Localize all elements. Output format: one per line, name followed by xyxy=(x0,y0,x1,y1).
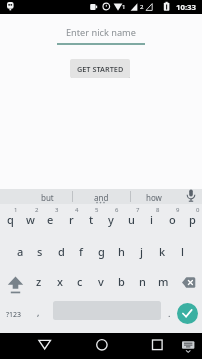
staticText: 6 xyxy=(115,206,119,214)
staticText: 10:33 xyxy=(176,2,197,13)
staticText: , xyxy=(37,306,40,318)
button[interactable]: k xyxy=(152,237,172,266)
staticText: g xyxy=(98,244,105,259)
staticText: e xyxy=(47,212,54,227)
staticText: 0 xyxy=(196,206,200,214)
button[interactable]: GET STARTED xyxy=(70,59,130,78)
button[interactable]: f xyxy=(71,237,91,266)
button[interactable]: h xyxy=(111,237,131,266)
staticText: k xyxy=(159,244,166,259)
staticText: 9 xyxy=(176,206,180,214)
button[interactable]: z xyxy=(29,267,49,296)
staticText: z xyxy=(36,274,42,289)
staticText: c xyxy=(77,274,83,289)
button[interactable]: w xyxy=(20,205,40,234)
button[interactable]: n xyxy=(132,267,152,296)
staticText: 8 xyxy=(156,206,160,214)
staticText: 3 xyxy=(55,206,59,214)
staticText: u xyxy=(128,212,135,227)
button[interactable]: , xyxy=(28,302,49,322)
button[interactable]: l xyxy=(172,237,192,266)
staticText: a xyxy=(17,244,24,259)
staticText: x xyxy=(57,274,63,289)
button[interactable]: q xyxy=(0,205,20,234)
staticText: w xyxy=(26,212,35,227)
button[interactable]: i xyxy=(141,205,161,234)
button[interactable]: e xyxy=(40,205,60,234)
staticText: ?123 xyxy=(6,310,22,320)
staticText: o xyxy=(169,212,176,227)
staticText: m xyxy=(158,274,169,289)
button[interactable]: how xyxy=(131,190,177,204)
button[interactable] xyxy=(2,267,30,296)
staticText: h xyxy=(118,244,125,259)
staticText: 1 xyxy=(122,3,126,11)
button[interactable] xyxy=(172,267,202,296)
staticText: 2 xyxy=(140,3,144,11)
button[interactable]: r xyxy=(61,205,81,234)
staticText: d xyxy=(58,244,65,259)
button[interactable] xyxy=(31,333,59,358)
staticText: GET STARTED xyxy=(77,64,124,74)
staticText: f xyxy=(79,244,83,259)
staticText: 1 xyxy=(14,206,18,214)
button[interactable]: j xyxy=(131,237,151,266)
button[interactable] xyxy=(177,303,198,324)
staticText: 7 xyxy=(136,206,140,214)
button[interactable]: but xyxy=(22,190,72,204)
button[interactable]: ?123 xyxy=(1,305,26,325)
staticText: 4 xyxy=(75,206,79,214)
staticText: s xyxy=(37,244,43,259)
staticText: . xyxy=(168,307,171,319)
button[interactable]: b xyxy=(111,267,131,296)
button[interactable]: m xyxy=(153,267,173,296)
staticText: n xyxy=(139,274,146,289)
button[interactable]: s xyxy=(30,237,50,266)
button[interactable]: o xyxy=(162,205,182,234)
button[interactable] xyxy=(142,333,170,358)
staticText: p xyxy=(189,212,196,227)
button[interactable]: v xyxy=(91,267,111,296)
staticText: q xyxy=(7,212,14,227)
staticText: 2 xyxy=(35,206,39,214)
button[interactable] xyxy=(88,333,116,358)
staticText: j xyxy=(140,244,143,259)
button[interactable]: a xyxy=(10,237,30,266)
staticText: r xyxy=(69,212,74,227)
button[interactable]: c xyxy=(70,267,90,296)
button[interactable]: p xyxy=(182,205,202,234)
staticText: 5 xyxy=(95,206,99,214)
button[interactable]: t xyxy=(81,205,101,234)
staticText: t xyxy=(89,212,94,227)
button[interactable]: and xyxy=(74,190,128,204)
button[interactable]: . xyxy=(159,303,180,323)
button[interactable] xyxy=(178,189,202,205)
button[interactable]: x xyxy=(50,267,70,296)
button[interactable]: u xyxy=(121,205,141,234)
button[interactable]: d xyxy=(51,237,71,266)
button[interactable]: g xyxy=(91,237,111,266)
staticText: l xyxy=(181,244,184,259)
button[interactable] xyxy=(176,337,198,355)
staticText: v xyxy=(98,274,104,289)
button[interactable]: Enter nick name xyxy=(57,21,145,45)
staticText: but xyxy=(41,192,54,203)
staticText: b xyxy=(118,274,125,289)
staticText: Enter nick name xyxy=(66,26,136,39)
staticText: y xyxy=(108,212,114,227)
staticText: how xyxy=(146,192,162,203)
staticText: i xyxy=(150,212,153,227)
button[interactable]: y xyxy=(101,205,121,234)
staticText: and xyxy=(94,192,109,203)
